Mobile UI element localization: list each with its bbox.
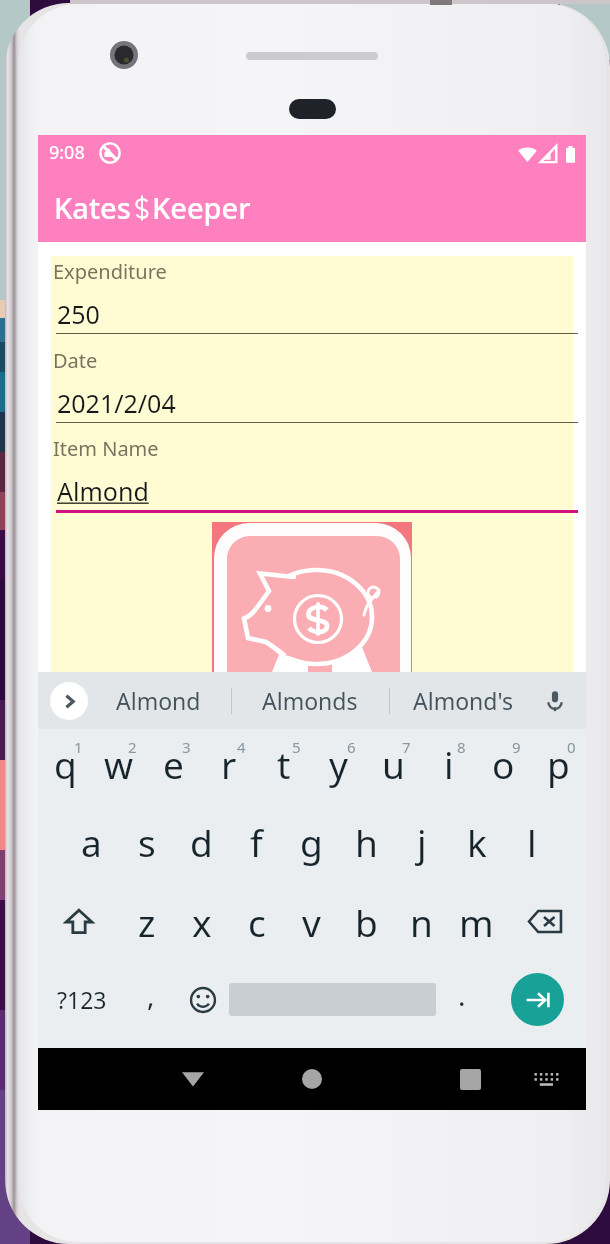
button[interactable]: v xyxy=(284,882,339,961)
staticText: Kates xyxy=(54,188,131,227)
staticText: y xyxy=(329,739,348,789)
button[interactable]: x xyxy=(174,882,229,961)
staticText: 9:08 xyxy=(49,140,85,165)
button[interactable]: 1 xyxy=(38,729,92,811)
staticText: e xyxy=(163,739,184,789)
button[interactable]: n xyxy=(394,882,449,961)
button[interactable] xyxy=(229,960,436,1039)
button[interactable]: 3 xyxy=(146,729,201,811)
button[interactable]: 6 xyxy=(311,729,366,811)
button[interactable]: Emoji xyxy=(177,960,229,1039)
staticText: s xyxy=(138,817,156,867)
staticText: g xyxy=(300,817,323,867)
staticText: 2021/2/04 xyxy=(57,386,176,420)
button[interactable]: j xyxy=(394,802,449,881)
button[interactable]: , xyxy=(125,960,177,1039)
button[interactable]: g xyxy=(284,802,339,881)
staticText: 4 xyxy=(237,737,246,757)
staticText: c xyxy=(248,897,266,947)
button[interactable]: c xyxy=(229,882,284,961)
staticText: Keeper xyxy=(152,188,251,227)
staticText: ?123 xyxy=(57,984,107,1015)
button[interactable]: b xyxy=(339,882,394,961)
staticText: 5 xyxy=(292,737,301,757)
staticText: 250 xyxy=(57,297,100,331)
button[interactable]: Almonds xyxy=(245,672,375,729)
button[interactable]: Switch keyboard xyxy=(513,1048,578,1110)
button[interactable]: 5 xyxy=(256,729,311,811)
staticText: q xyxy=(54,739,77,789)
staticText: p xyxy=(547,739,570,789)
button[interactable]: d xyxy=(174,802,229,881)
button[interactable]: Backspace xyxy=(504,882,586,961)
staticText: 1 xyxy=(74,737,83,757)
staticText: i xyxy=(444,739,454,789)
staticText: Almond xyxy=(116,685,201,716)
staticText: x xyxy=(192,897,212,947)
button[interactable]: ?123 xyxy=(38,960,125,1039)
staticText: m xyxy=(459,897,494,947)
staticText: l xyxy=(527,817,537,867)
staticText: k xyxy=(467,817,487,867)
staticText: . xyxy=(458,976,466,1014)
staticText: 9 xyxy=(512,737,521,757)
button[interactable]: k xyxy=(449,802,504,881)
staticText: Almond xyxy=(57,474,149,508)
button[interactable]: 0 xyxy=(531,729,586,811)
button[interactable]: h xyxy=(339,802,394,881)
button[interactable]: 9 xyxy=(476,729,531,811)
staticText: z xyxy=(138,897,156,947)
button[interactable]: l xyxy=(504,802,559,881)
button[interactable]: Shift xyxy=(38,882,119,961)
staticText: d xyxy=(190,817,213,867)
button[interactable]: Next field xyxy=(511,973,564,1026)
staticText: b xyxy=(355,897,378,947)
staticText: u xyxy=(382,739,405,789)
staticText: a xyxy=(81,817,102,867)
staticText: r xyxy=(221,739,237,789)
staticText: f xyxy=(250,817,263,867)
staticText: o xyxy=(492,739,515,789)
staticText: 2 xyxy=(128,737,137,757)
button[interactable]: Hide keyboard xyxy=(153,1048,233,1110)
staticText: Date xyxy=(53,347,98,374)
button[interactable]: . xyxy=(436,960,488,1039)
button[interactable]: Almond's xyxy=(398,672,528,729)
staticText: w xyxy=(104,739,134,789)
button[interactable]: z xyxy=(119,882,174,961)
button[interactable]: Almond xyxy=(98,672,218,729)
button[interactable]: 7 xyxy=(366,729,421,811)
button[interactable]: 8 xyxy=(421,729,476,811)
staticText: Almond's xyxy=(413,685,513,716)
staticText: 3 xyxy=(182,737,191,757)
staticText: Almonds xyxy=(262,685,358,716)
staticText: Expenditure xyxy=(53,258,167,285)
button[interactable]: a xyxy=(64,802,119,881)
button[interactable]: Home xyxy=(272,1048,352,1110)
button[interactable]: 4 xyxy=(201,729,256,811)
button[interactable]: Voice input xyxy=(538,684,572,718)
button[interactable]: f xyxy=(229,802,284,881)
staticText: 8 xyxy=(457,737,466,757)
button[interactable]: m xyxy=(449,882,504,961)
staticText: t xyxy=(277,739,291,789)
staticText: h xyxy=(355,817,378,867)
button[interactable]: Recent apps xyxy=(430,1048,510,1110)
button[interactable]: 2 xyxy=(92,729,146,811)
staticText: 6 xyxy=(347,737,356,757)
staticText: 7 xyxy=(402,737,411,757)
staticText: , xyxy=(147,976,155,1014)
staticText: j xyxy=(417,817,427,867)
button[interactable]: More suggestions xyxy=(50,682,88,720)
button[interactable]: s xyxy=(119,802,174,881)
staticText: n xyxy=(410,897,433,947)
staticText: Item Name xyxy=(53,435,159,462)
staticText: v xyxy=(302,897,321,947)
staticText: 0 xyxy=(567,737,576,757)
